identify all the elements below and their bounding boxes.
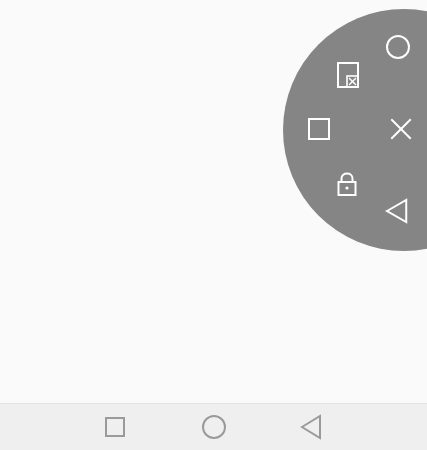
button[interactable]: Back	[284, 403, 340, 450]
button[interactable]: Record	[376, 25, 420, 69]
button[interactable]: Back	[376, 189, 420, 233]
button[interactable]: Lock screen	[325, 161, 369, 205]
button[interactable]: Close page	[326, 53, 370, 97]
button[interactable]: Recent apps	[87, 403, 143, 450]
button[interactable]: Recent apps	[297, 107, 341, 151]
button[interactable]: Home	[186, 403, 242, 450]
button[interactable]: Close	[379, 107, 423, 151]
